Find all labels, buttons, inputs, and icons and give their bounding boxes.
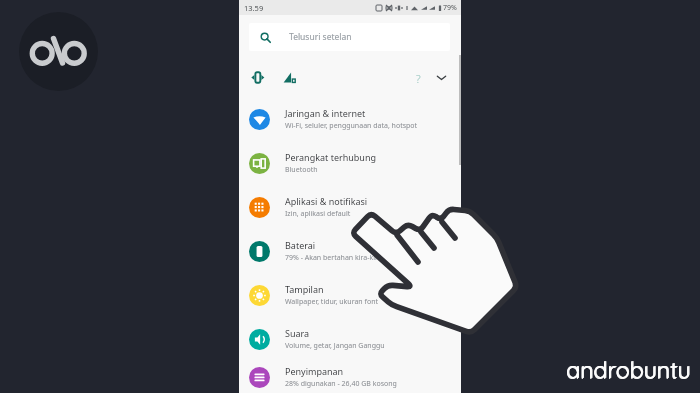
button[interactable]: Penyimpanan [239, 361, 461, 393]
staticText: 13.59 [244, 3, 264, 13]
staticText: Penyimpanan [285, 365, 344, 377]
button[interactable]: Jaringan & internet [239, 97, 461, 141]
button[interactable]: Perangkat terhubung [239, 141, 461, 185]
button[interactable]: Mobile network [283, 71, 296, 84]
staticText: Izin, aplikasi default [285, 209, 351, 219]
staticText: Aplikasi & notifikasi [285, 195, 368, 207]
staticText: androbuntu [566, 356, 691, 385]
staticText: Baterai [285, 239, 316, 251]
staticText: 79% [443, 3, 457, 13]
staticText: ? [416, 71, 421, 84]
staticText: Suara [285, 327, 310, 339]
button[interactable]: Expand [435, 71, 448, 84]
button[interactable]: Search [249, 23, 450, 51]
staticText: Perangkat terhubung [285, 151, 377, 163]
button[interactable]: Suara [239, 317, 461, 361]
staticText: Wi-Fi, seluler, penggunaan data, hotspot [285, 121, 418, 131]
staticText: Volume, getar, Jangan Ganggu [285, 341, 385, 351]
staticText: Telusuri setelan [289, 31, 352, 43]
button[interactable]: Baterai [239, 229, 461, 273]
staticText: Jaringan & internet [285, 107, 366, 119]
button[interactable]: Tampilan [239, 273, 461, 317]
staticText: androbuntu [566, 355, 691, 384]
staticText: androbuntu [567, 355, 692, 384]
staticText: 79% - Akan bertahan kira-kira sampai 20.… [285, 253, 428, 263]
button[interactable]: Auto rotate [252, 71, 265, 84]
staticText: 28% digunakan - 26,40 GB kosong [285, 379, 397, 389]
button[interactable]: Help [412, 71, 425, 84]
staticText: Tampilan [285, 283, 324, 295]
staticText: Bluetooth [285, 165, 318, 175]
staticText: Wallpaper, tidur, ukuran font [285, 297, 379, 307]
button[interactable]: Androbuntu logo [19, 12, 98, 91]
other: Search [260, 32, 271, 43]
button[interactable]: Aplikasi & notifikasi [239, 185, 461, 229]
